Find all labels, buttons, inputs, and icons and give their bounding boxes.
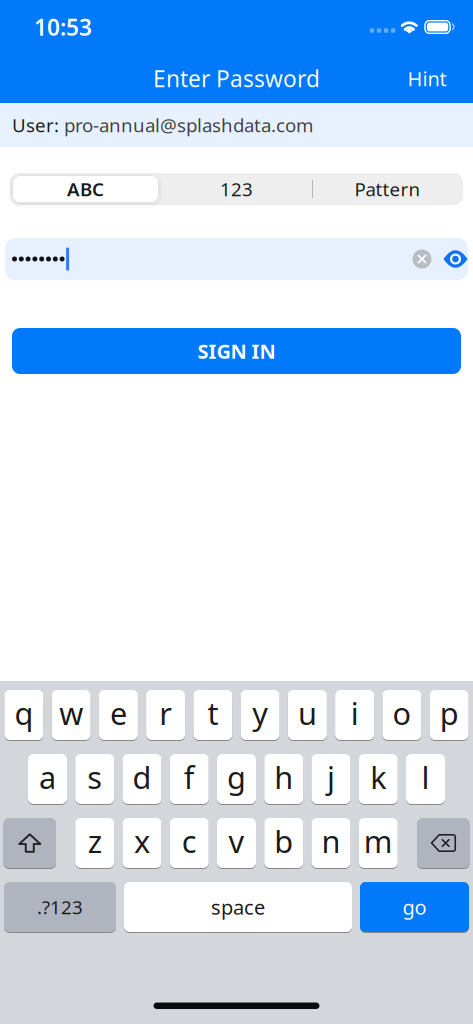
- staticText: .?123: [37, 895, 83, 919]
- staticText: r: [159, 693, 172, 733]
- button[interactable]: g: [217, 754, 256, 804]
- staticText: j: [327, 757, 335, 797]
- staticText: 123: [220, 177, 253, 201]
- button[interactable]: Password: [0, 238, 473, 280]
- staticText: o: [392, 693, 411, 733]
- button[interactable]: h: [264, 754, 303, 804]
- button[interactable]: f: [170, 754, 209, 804]
- staticText: x: [134, 821, 150, 861]
- button[interactable]: y: [241, 690, 280, 740]
- button[interactable]: q: [4, 690, 43, 740]
- button[interactable]: Clear text: [412, 249, 431, 268]
- staticText: k: [370, 757, 386, 797]
- button[interactable]: ABC: [10, 173, 161, 205]
- button[interactable]: Delete: [417, 818, 469, 868]
- button[interactable]: a: [28, 754, 67, 804]
- staticText: Hint: [407, 65, 446, 92]
- staticText: h: [274, 757, 293, 797]
- button[interactable]: d: [122, 754, 161, 804]
- staticText: n: [321, 821, 340, 861]
- staticText: space: [211, 894, 265, 920]
- button[interactable]: b: [264, 818, 303, 868]
- staticText: SIGN IN: [197, 338, 275, 364]
- button[interactable]: Hint: [407, 65, 446, 92]
- staticText: b: [274, 821, 293, 861]
- button[interactable]: s: [75, 754, 114, 804]
- staticText: d: [132, 757, 151, 797]
- button[interactable]: SIGN IN: [12, 328, 461, 374]
- button[interactable]: j: [311, 754, 350, 804]
- button[interactable]: Show password: [443, 251, 467, 267]
- staticText: p: [440, 693, 459, 733]
- staticText: Pattern: [354, 177, 420, 201]
- staticText: v: [228, 821, 244, 861]
- button[interactable]: c: [170, 818, 209, 868]
- button[interactable]: k: [359, 754, 398, 804]
- staticText: q: [14, 693, 33, 733]
- staticText: y: [252, 693, 268, 733]
- button[interactable]: l: [406, 754, 445, 804]
- staticText: i: [351, 693, 359, 733]
- staticText: w: [59, 693, 83, 733]
- button[interactable]: t: [193, 690, 232, 740]
- staticText: Enter Password: [153, 63, 320, 93]
- staticText: s: [87, 757, 102, 797]
- button[interactable]: o: [382, 690, 421, 740]
- button[interactable]: go: [360, 882, 469, 932]
- button[interactable]: u: [288, 690, 327, 740]
- staticText: t: [207, 693, 218, 733]
- staticText: pro-annual@splashdata.com: [64, 113, 313, 137]
- button[interactable]: 123: [161, 177, 312, 201]
- staticText: ABC: [67, 177, 104, 201]
- button[interactable]: m: [359, 818, 398, 868]
- button[interactable]: i: [335, 690, 374, 740]
- button[interactable]: p: [430, 690, 469, 740]
- button[interactable]: v: [217, 818, 256, 868]
- staticText: l: [421, 757, 429, 797]
- button[interactable]: Shift: [3, 818, 56, 868]
- staticText: g: [227, 757, 246, 797]
- staticText: u: [298, 693, 317, 733]
- staticText: e: [110, 693, 127, 733]
- staticText: z: [88, 821, 102, 861]
- button[interactable]: space: [124, 882, 352, 932]
- staticText: User:: [12, 113, 64, 137]
- button[interactable]: w: [52, 690, 91, 740]
- staticText: go: [402, 894, 426, 920]
- button[interactable]: .?123: [4, 882, 116, 932]
- staticText: 10:53: [34, 12, 92, 42]
- staticText: f: [184, 757, 195, 797]
- button[interactable]: r: [146, 690, 185, 740]
- button[interactable]: e: [99, 690, 138, 740]
- staticText: a: [39, 757, 56, 797]
- staticText: c: [182, 821, 197, 861]
- staticText: m: [364, 821, 393, 861]
- button[interactable]: n: [311, 818, 350, 868]
- button[interactable]: z: [75, 818, 114, 868]
- button[interactable]: x: [122, 818, 161, 868]
- button[interactable]: Pattern: [312, 177, 463, 201]
